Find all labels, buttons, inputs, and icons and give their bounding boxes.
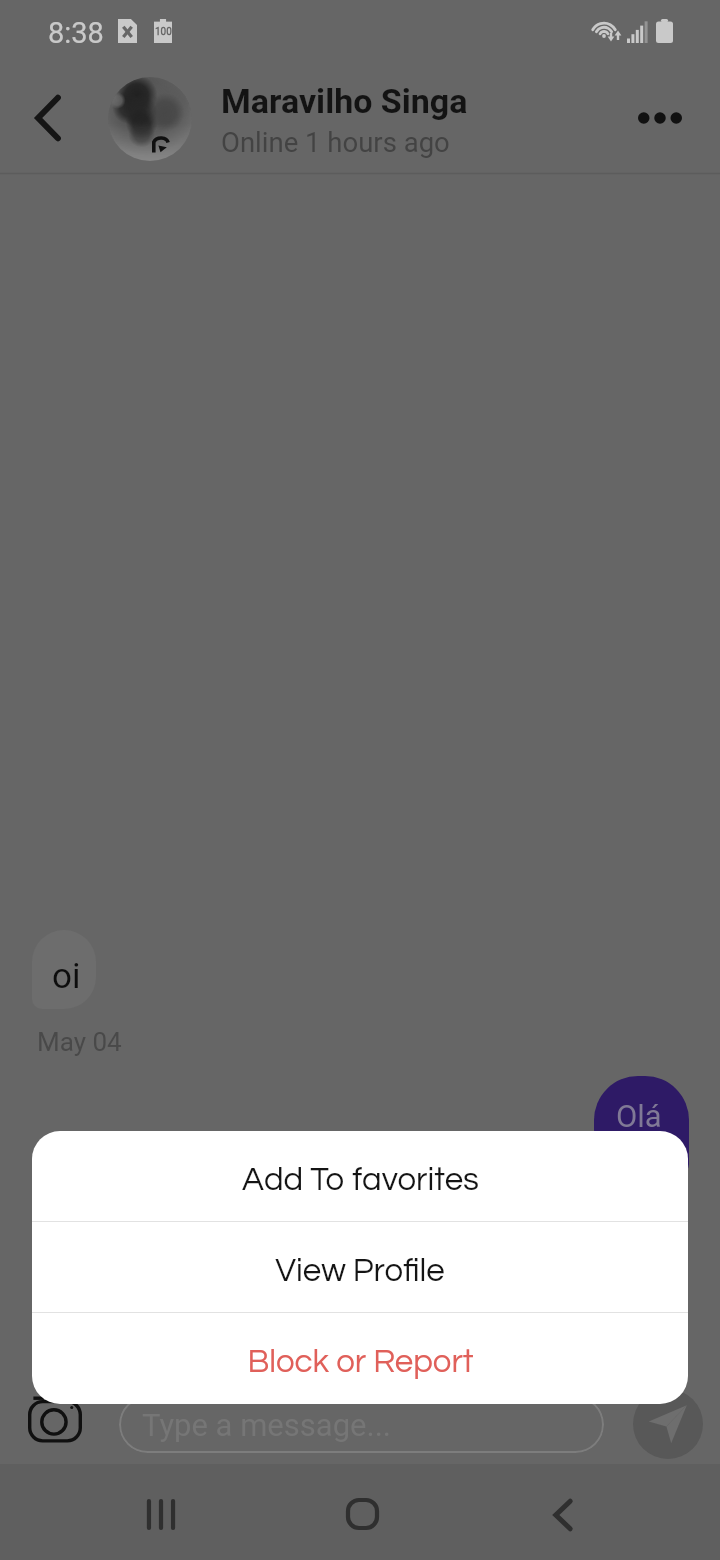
- staticText: View Profile: [275, 1254, 445, 1288]
- staticText: 100: [155, 26, 172, 38]
- button[interactable]: Block or Report: [32, 1313, 688, 1403]
- button[interactable]: Back: [14, 84, 82, 152]
- button[interactable]: oi: [32, 930, 96, 1009]
- button[interactable]: View Profile: [32, 1222, 688, 1312]
- button[interactable]: Olá: [594, 1076, 689, 1174]
- button[interactable]: Add To favorites: [32, 1131, 688, 1221]
- button[interactable]: Camera: [17, 1387, 95, 1455]
- staticText: May 04: [37, 1027, 122, 1057]
- button[interactable]: Home: [327, 1479, 397, 1549]
- button[interactable]: More options: [626, 84, 694, 152]
- staticText: Online 1 hours ago: [221, 126, 450, 158]
- staticText: Add To favorites: [242, 1163, 479, 1197]
- button[interactable]: Profile photo: [108, 77, 192, 161]
- button[interactable]: Type a message...: [119, 1396, 604, 1453]
- button[interactable]: Send: [633, 1389, 703, 1459]
- staticText: Block or Report: [247, 1345, 474, 1379]
- staticText: oi: [52, 956, 81, 997]
- button[interactable]: Recent apps: [126, 1479, 196, 1549]
- button[interactable]: Back: [528, 1480, 598, 1550]
- staticText: Maravilho Singa: [221, 81, 468, 121]
- staticText: Type a message...: [142, 1407, 392, 1443]
- staticText: Olá: [616, 1098, 662, 1134]
- staticText: 8:38: [48, 16, 104, 50]
